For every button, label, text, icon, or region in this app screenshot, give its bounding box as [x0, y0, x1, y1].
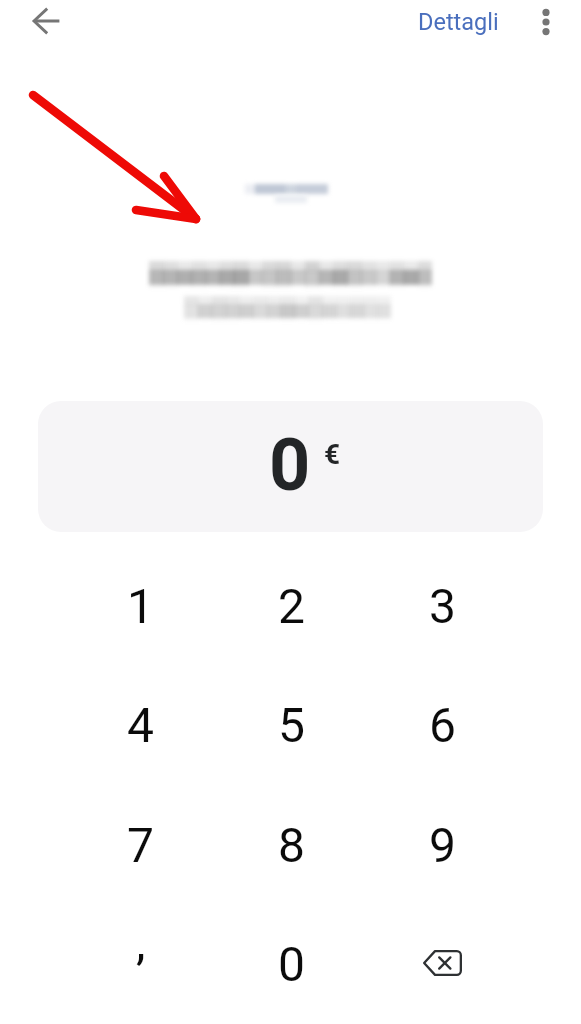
button[interactable]: 1	[65, 546, 216, 665]
staticText: 0	[278, 936, 305, 992]
staticText: 6	[429, 697, 456, 753]
staticText: 4	[127, 697, 154, 753]
staticText: ,	[136, 914, 146, 970]
button[interactable]: 4	[65, 665, 216, 784]
button[interactable]: 0	[216, 904, 367, 1023]
button[interactable]: Back	[22, 0, 70, 43]
button[interactable]: 5	[216, 665, 367, 784]
staticText: 5	[278, 697, 305, 753]
staticText: 0	[269, 423, 311, 507]
button[interactable]: 0	[38, 401, 543, 532]
staticText: 8	[278, 817, 305, 873]
staticText: 9	[429, 817, 456, 873]
button[interactable]: ,	[65, 904, 216, 1023]
button[interactable]: 6	[367, 665, 518, 784]
button[interactable]: 2	[216, 546, 367, 665]
button[interactable]: Backspace	[367, 904, 518, 1023]
staticText: 3	[429, 578, 456, 634]
button[interactable]: Dettagli	[412, 2, 505, 42]
button[interactable]: 8	[216, 785, 367, 904]
staticText: 7	[127, 817, 154, 873]
staticText: €	[324, 438, 341, 471]
button[interactable]: 7	[65, 785, 216, 904]
staticText: 1	[127, 578, 154, 634]
button[interactable]: 3	[367, 546, 518, 665]
staticText: 2	[278, 578, 305, 634]
button[interactable]: More options	[524, 0, 568, 44]
staticText: Dettagli	[418, 8, 499, 36]
button[interactable]: 9	[367, 785, 518, 904]
